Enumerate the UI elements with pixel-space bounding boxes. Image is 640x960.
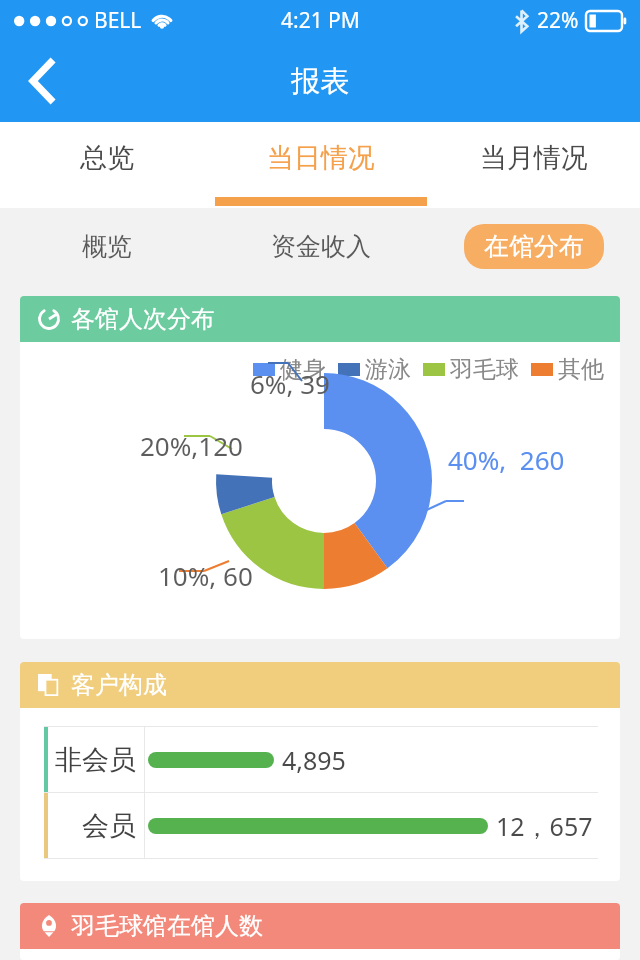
staticText: 各馆人次分布 [71,304,215,334]
staticText: BELL [94,6,142,35]
button[interactable]: 当日情况 [214,122,427,208]
staticText: 6%, 39 [250,366,330,401]
staticText: 羽毛球 [450,355,519,384]
staticText: 羽毛球馆在馆人数 [71,911,263,941]
staticText: 40%, 260 [448,442,565,477]
staticText: 4:21 PM [281,6,360,35]
button[interactable]: Back [0,40,84,122]
staticText: 20%,120 [140,428,243,463]
staticText: 游泳 [365,355,411,384]
staticText: 22% [537,6,579,35]
button[interactable]: 当月情况 [427,122,640,208]
button[interactable]: 概览 [0,208,214,284]
staticText: 4,895 [282,743,346,777]
staticText: 总览 [80,141,134,175]
staticText: 会员 [82,809,136,843]
button[interactable]: 在馆分布 [464,224,604,269]
staticText: 客户构成 [71,670,167,700]
button[interactable]: 羽毛球馆在馆人数 [20,903,620,960]
staticText: 非会员 [55,743,136,777]
staticText: 报表 [291,63,349,100]
staticText: 在馆分布 [484,231,584,262]
staticText: 概览 [82,231,132,262]
button[interactable]: 客户构成 [20,662,620,881]
staticText: 10%, 60 [158,558,253,593]
staticText: 12，657 [496,809,593,843]
staticText: 资金收入 [271,231,371,262]
button[interactable]: 资金收入 [214,208,427,284]
staticText: 当日情况 [267,141,375,175]
button[interactable]: 各馆人次分布 [20,296,620,639]
button[interactable]: 总览 [0,122,214,208]
staticText: 其他 [558,355,604,384]
staticText: 健身 [280,355,326,384]
staticText: 当月情况 [480,141,588,175]
